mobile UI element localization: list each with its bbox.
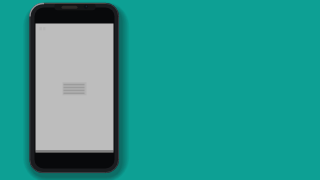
button[interactable] <box>62 82 86 96</box>
